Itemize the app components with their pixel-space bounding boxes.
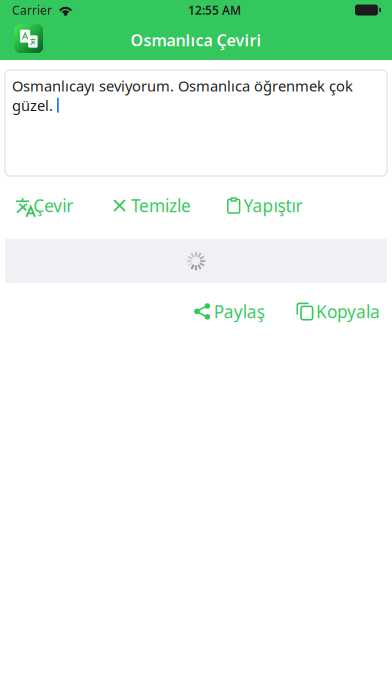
button[interactable]: Uygulama simgesi (14, 24, 43, 53)
staticText: Yapıştır (243, 194, 302, 217)
staticText: Kopyala (316, 300, 380, 323)
staticText: Çevir (33, 194, 73, 217)
button[interactable]: Çevir (13, 190, 73, 221)
button[interactable]: Temizle (113, 190, 191, 221)
button[interactable]: Kopyala (297, 296, 380, 327)
staticText: Carrier (12, 2, 52, 18)
staticText: 12:55 AM (188, 2, 241, 18)
staticText: Paylaş (214, 300, 265, 323)
button[interactable]: Yapıştır (227, 190, 302, 221)
staticText: Temizle (131, 194, 191, 217)
button[interactable]: Paylaş (194, 296, 265, 327)
staticText: Osmanlıcayı seviyorum. Osmanlıca öğrenme… (12, 76, 353, 95)
staticText: güzel. (12, 95, 53, 115)
staticText: Osmanlıca Çeviri (130, 29, 261, 51)
